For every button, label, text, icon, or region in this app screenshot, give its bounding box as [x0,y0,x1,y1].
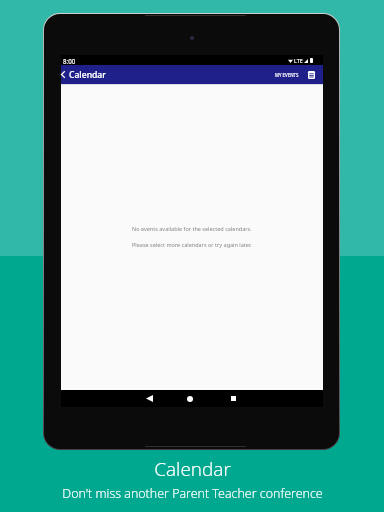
staticText: Calendar [69,69,106,81]
button[interactable]: MY EVENTS [272,69,302,81]
staticText: MY EVENTS [275,72,299,78]
button[interactable]: Recent apps [222,390,244,407]
staticText: No events available for the selected cal… [132,225,252,232]
staticText: 8:00 [63,57,76,65]
button[interactable]: Select calendars [306,65,317,84]
staticText: LTE [294,57,303,64]
button[interactable]: Navigate up [61,65,70,84]
button[interactable]: Back [138,390,160,407]
staticText: Calendar [154,456,231,482]
staticText: Don't miss another Parent Teacher confer… [62,485,323,502]
staticText: Please select more calendars or try agai… [132,241,252,248]
button[interactable]: Home [179,390,201,407]
